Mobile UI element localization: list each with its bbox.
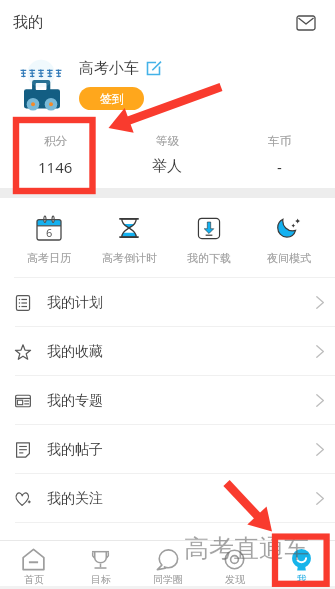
button[interactable]: 6 — [9, 198, 89, 265]
staticText: 同学圈 — [153, 573, 183, 586]
staticText: 我的收藏 — [47, 343, 103, 361]
staticText: 首页 — [24, 573, 44, 586]
staticText: 举人 — [152, 157, 182, 176]
button[interactable]: 高考倒计时 — [89, 198, 169, 265]
staticText: 积分 — [44, 134, 67, 148]
staticText: 高考直通车 — [184, 533, 309, 564]
staticText: 我的下载 — [187, 251, 231, 265]
button[interactable]: 夜间模式 — [249, 198, 329, 265]
button[interactable]: 我的收藏 — [0, 327, 335, 376]
button[interactable]: 首页 — [0, 541, 67, 586]
staticText: 发现 — [225, 573, 245, 586]
button[interactable]: 同学圈 — [134, 541, 201, 586]
staticText: 6 — [46, 225, 53, 240]
staticText: 我的 — [13, 13, 43, 32]
button[interactable]: 发现 — [201, 541, 268, 586]
staticText: 1146 — [38, 157, 73, 177]
button[interactable]: 我的帖子 — [0, 425, 335, 474]
staticText: 夜间模式 — [267, 251, 311, 265]
staticText: - — [277, 157, 282, 177]
staticText: 高考日历 — [27, 251, 71, 265]
button[interactable]: 等级 — [111, 118, 223, 176]
staticText: 我的计划 — [47, 294, 103, 312]
staticText: 高考小车 — [79, 59, 139, 78]
button[interactable]: 签到 — [79, 87, 144, 110]
staticText: 我 — [297, 573, 307, 586]
staticText: 高考倒计时 — [102, 251, 157, 265]
button[interactable]: 目标 — [67, 541, 134, 586]
staticText: 车币 — [268, 134, 291, 148]
staticText: 签到 — [100, 91, 124, 106]
staticText: 等级 — [156, 134, 179, 148]
button[interactable]: 我的计划 — [0, 278, 335, 327]
button[interactable]: 我 — [268, 541, 335, 586]
button[interactable]: 我的关注 — [0, 474, 335, 523]
button[interactable]: Edit profile — [146, 61, 161, 76]
staticText: 我的关注 — [47, 490, 103, 508]
staticText: 目标 — [91, 573, 111, 586]
button[interactable]: Messages — [294, 11, 318, 35]
staticText: 我的帖子 — [47, 441, 103, 459]
button[interactable]: 车币 — [223, 118, 335, 177]
button[interactable]: 积分 — [0, 118, 111, 177]
button[interactable]: 我的下载 — [169, 198, 249, 265]
button[interactable]: 我的专题 — [0, 376, 335, 425]
staticText: 我的专题 — [47, 392, 103, 410]
